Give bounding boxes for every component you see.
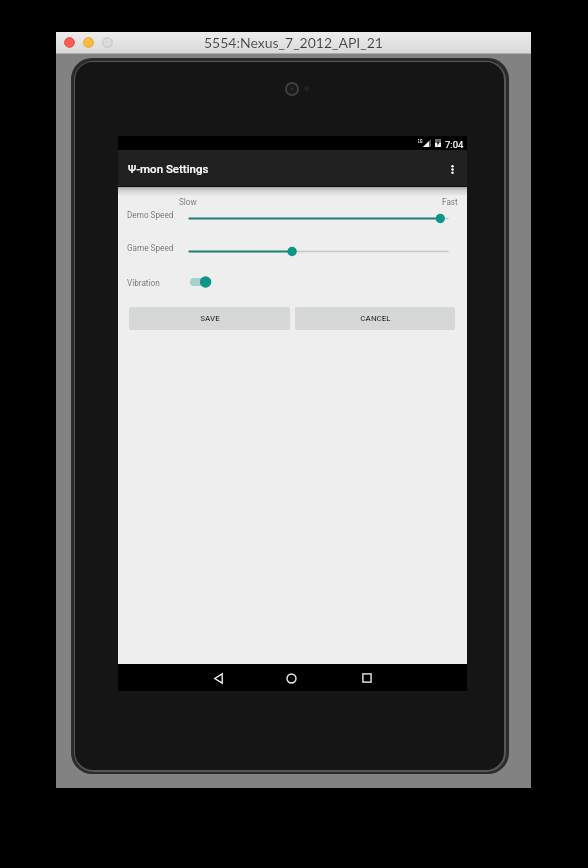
button[interactable]: Recent apps [354, 666, 379, 690]
button[interactable]: Slider [184, 243, 454, 259]
staticText: 5554:Nexus_7_2012_API_21 [204, 34, 383, 51]
staticText: SAVE [200, 314, 220, 323]
button[interactable]: Slider [184, 210, 454, 226]
button[interactable]: Home [279, 666, 304, 690]
staticText: Ψ-mon Settings [128, 162, 209, 175]
staticText: CANCEL [360, 314, 391, 323]
button[interactable]: Back [206, 666, 231, 690]
button[interactable]: Vibration toggle [186, 272, 216, 292]
button[interactable]: SAVE [129, 307, 290, 330]
staticText: Vibration [127, 278, 160, 288]
staticText: Fast [442, 197, 458, 207]
staticText: Slow [179, 197, 197, 207]
button[interactable]: CANCEL [295, 307, 455, 330]
staticText: Demo Speed [127, 210, 174, 220]
button[interactable]: More options [437, 151, 467, 187]
staticText: Game Speed [127, 243, 174, 253]
staticText: 7:04 [445, 139, 464, 150]
